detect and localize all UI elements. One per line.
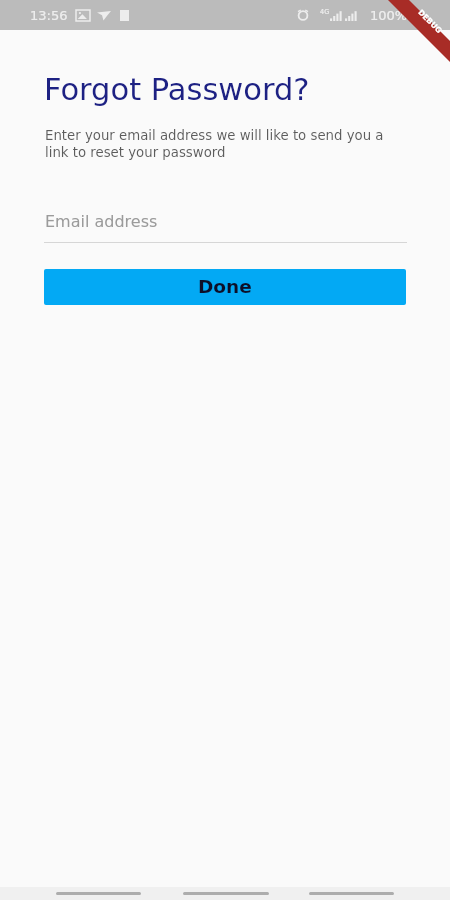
staticText: Email address	[45, 212, 158, 231]
staticText: DEBUG	[416, 8, 444, 35]
staticText: Done	[198, 276, 252, 298]
button[interactable]: Recent apps	[56, 887, 141, 900]
button[interactable]: Back	[309, 887, 394, 900]
staticText: 4G	[320, 8, 330, 16]
button[interactable]: Home	[183, 887, 269, 900]
staticText: Forgot Password?	[44, 72, 310, 108]
button[interactable]: Done	[44, 269, 406, 305]
staticText: Enter your email address we will like to…	[45, 128, 387, 160]
staticText: 13:56	[30, 8, 68, 23]
button[interactable]: Email address	[44, 205, 407, 243]
staticText: 100%	[370, 8, 408, 23]
